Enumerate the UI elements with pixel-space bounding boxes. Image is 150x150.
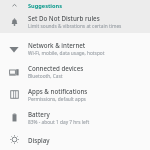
staticText: Connected devices (28, 64, 84, 72)
button[interactable]: Apps and notifications (0, 83, 150, 106)
staticText: Limit sounds & vibrations at certain tim… (28, 23, 122, 30)
button[interactable]: Do Not Disturb (0, 11, 150, 33)
staticText: Apps & notifications (28, 87, 88, 95)
other: Battery (10, 113, 19, 122)
staticText: Bluetooth, Cast (28, 73, 63, 80)
staticText: 83% - about 1 day 7 hrs left (28, 119, 90, 126)
other: Network and internet (9, 44, 19, 54)
staticText: Display (28, 136, 50, 144)
other: Apps and notifications (10, 90, 19, 99)
button[interactable]: Network and internet (0, 37, 150, 60)
other: Do Not Disturb (10, 18, 19, 27)
staticText: Suggestions (28, 2, 62, 10)
button[interactable]: Display (0, 129, 150, 150)
staticText: Battery (28, 110, 50, 118)
button[interactable]: Suggestions (0, 0, 150, 11)
staticText: Network & internet (28, 41, 86, 49)
staticText: Permissions, default apps (28, 96, 86, 103)
button[interactable]: Connected devices (0, 60, 150, 83)
staticText: Set Do Not Disturb rules (28, 14, 100, 22)
button[interactable]: Battery (0, 106, 150, 129)
other: Connected devices (9, 67, 19, 77)
other: Display (10, 135, 19, 144)
staticText: Wi-Fi, mobile, data usage, hotspot (28, 50, 105, 57)
